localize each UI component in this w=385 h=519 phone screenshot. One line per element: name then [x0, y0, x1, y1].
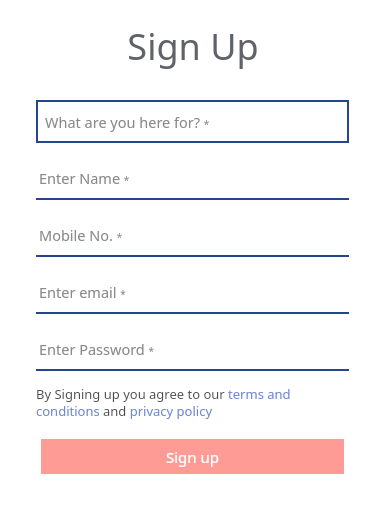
staticText: What are you here for? *: [45, 112, 210, 132]
button[interactable]: Enter Password *: [36, 329, 349, 371]
button[interactable]: By Signing up you agree to our terms and…: [36, 385, 349, 420]
staticText: Enter email *: [39, 282, 126, 302]
button[interactable]: What are you here for? *: [36, 100, 349, 143]
staticText: Mobile No. *: [39, 225, 123, 245]
staticText: Enter Password *: [39, 339, 155, 359]
button[interactable]: Mobile No. *: [36, 215, 349, 257]
button[interactable]: Sign up: [41, 439, 344, 474]
staticText: Enter Name *: [39, 168, 130, 188]
button[interactable]: Enter email *: [36, 272, 349, 314]
button[interactable]: Enter Name *: [36, 158, 349, 200]
staticText: Sign Up: [127, 22, 259, 71]
staticText: Sign up: [166, 447, 219, 467]
